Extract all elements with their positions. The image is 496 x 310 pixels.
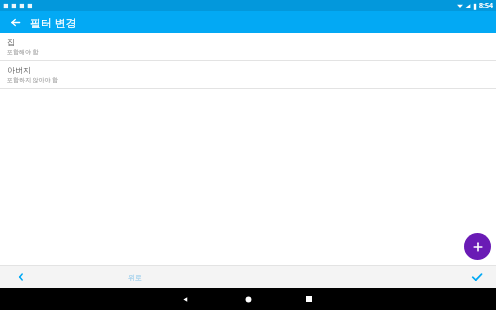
staticText: 8:54 xyxy=(479,1,493,11)
staticText: 필터 변경 xyxy=(30,15,77,30)
button[interactable]: Back xyxy=(6,13,24,31)
button[interactable]: Recents xyxy=(302,292,316,306)
staticText: 포함하지 않아야 함 xyxy=(7,76,59,84)
button[interactable]: Confirm xyxy=(468,268,486,286)
button[interactable]: 집 xyxy=(0,33,496,61)
staticText: 아버지 xyxy=(7,65,31,75)
button[interactable]: Back xyxy=(178,292,192,306)
button[interactable]: Previous xyxy=(12,268,30,286)
button[interactable]: Add filter xyxy=(464,233,491,260)
staticText: 위로 xyxy=(128,273,142,282)
staticText: 포함해야 함 xyxy=(7,48,39,56)
button[interactable]: Home xyxy=(241,292,255,306)
staticText: 집 xyxy=(7,37,15,47)
button[interactable]: 아버지 xyxy=(0,61,496,89)
